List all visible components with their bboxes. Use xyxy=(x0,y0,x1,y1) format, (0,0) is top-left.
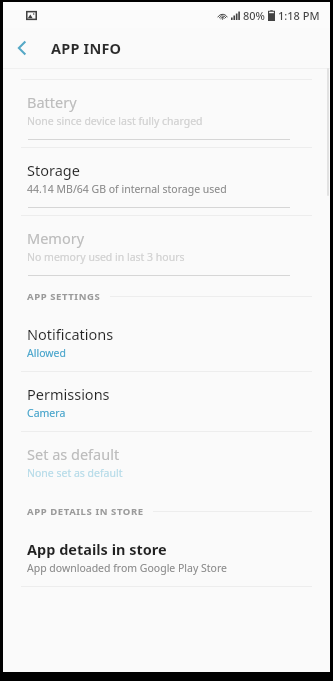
button[interactable]: Notifications xyxy=(3,312,330,371)
staticText: Permissions xyxy=(27,384,110,404)
staticText: 80% xyxy=(243,8,265,23)
staticText: Allowed xyxy=(27,346,66,360)
button[interactable]: Set as default xyxy=(3,432,330,491)
staticText: 44.14 MB/64 GB of internal storage used xyxy=(27,182,227,196)
staticText: APP SETTINGS xyxy=(27,290,101,303)
button[interactable]: Memory xyxy=(3,216,330,275)
button[interactable]: Battery xyxy=(3,80,330,139)
staticText: App downloaded from Google Play Store xyxy=(27,561,228,575)
staticText: Camera xyxy=(27,406,66,420)
staticText: App details in store xyxy=(27,539,167,559)
staticText: Set as default xyxy=(27,444,120,464)
staticText: Notifications xyxy=(27,324,114,344)
button[interactable]: Permissions xyxy=(3,372,330,431)
staticText: APP DETAILS IN STORE xyxy=(27,505,144,518)
button[interactable]: Navigate up xyxy=(3,29,41,67)
staticText: Storage xyxy=(27,160,80,180)
button[interactable]: App details in store xyxy=(3,527,330,586)
staticText: Battery xyxy=(27,92,77,112)
staticText: APP INFO xyxy=(51,38,122,58)
staticText: None since device last fully charged xyxy=(27,114,203,128)
staticText: No memory used in last 3 hours xyxy=(27,250,185,264)
staticText: 1:18 PM xyxy=(278,8,320,23)
staticText: None set as default xyxy=(27,466,123,480)
staticText: Memory xyxy=(27,228,85,248)
button[interactable]: Storage xyxy=(3,148,330,207)
